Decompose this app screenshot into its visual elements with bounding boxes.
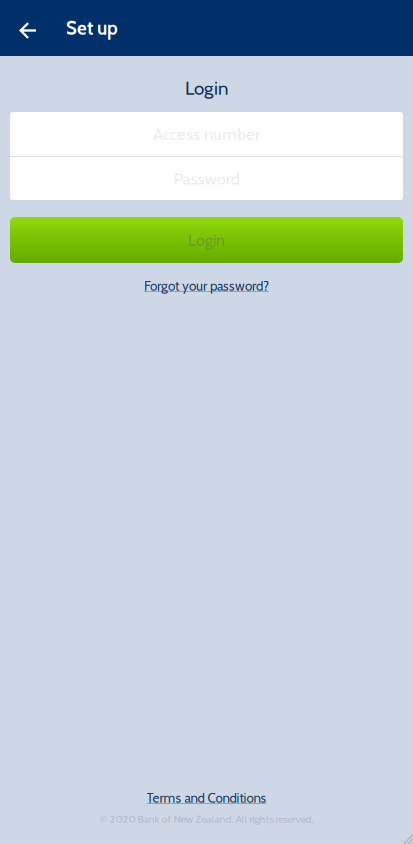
staticText: Login <box>185 77 228 99</box>
staticText: Forgot your password? <box>144 278 269 294</box>
button[interactable]: Forgot your password? <box>144 274 269 298</box>
button[interactable]: Terms and Conditions <box>146 789 266 807</box>
staticText: Terms and Conditions <box>146 790 266 806</box>
button[interactable]: Back <box>0 0 47 56</box>
staticText: Access number <box>153 124 260 144</box>
button[interactable]: Login <box>10 217 403 263</box>
staticText: Set up <box>66 17 118 39</box>
staticText: © 2020 Bank of New Zealand. All rights r… <box>99 812 313 825</box>
staticText: Password <box>173 168 239 189</box>
staticText: Login <box>188 230 225 250</box>
